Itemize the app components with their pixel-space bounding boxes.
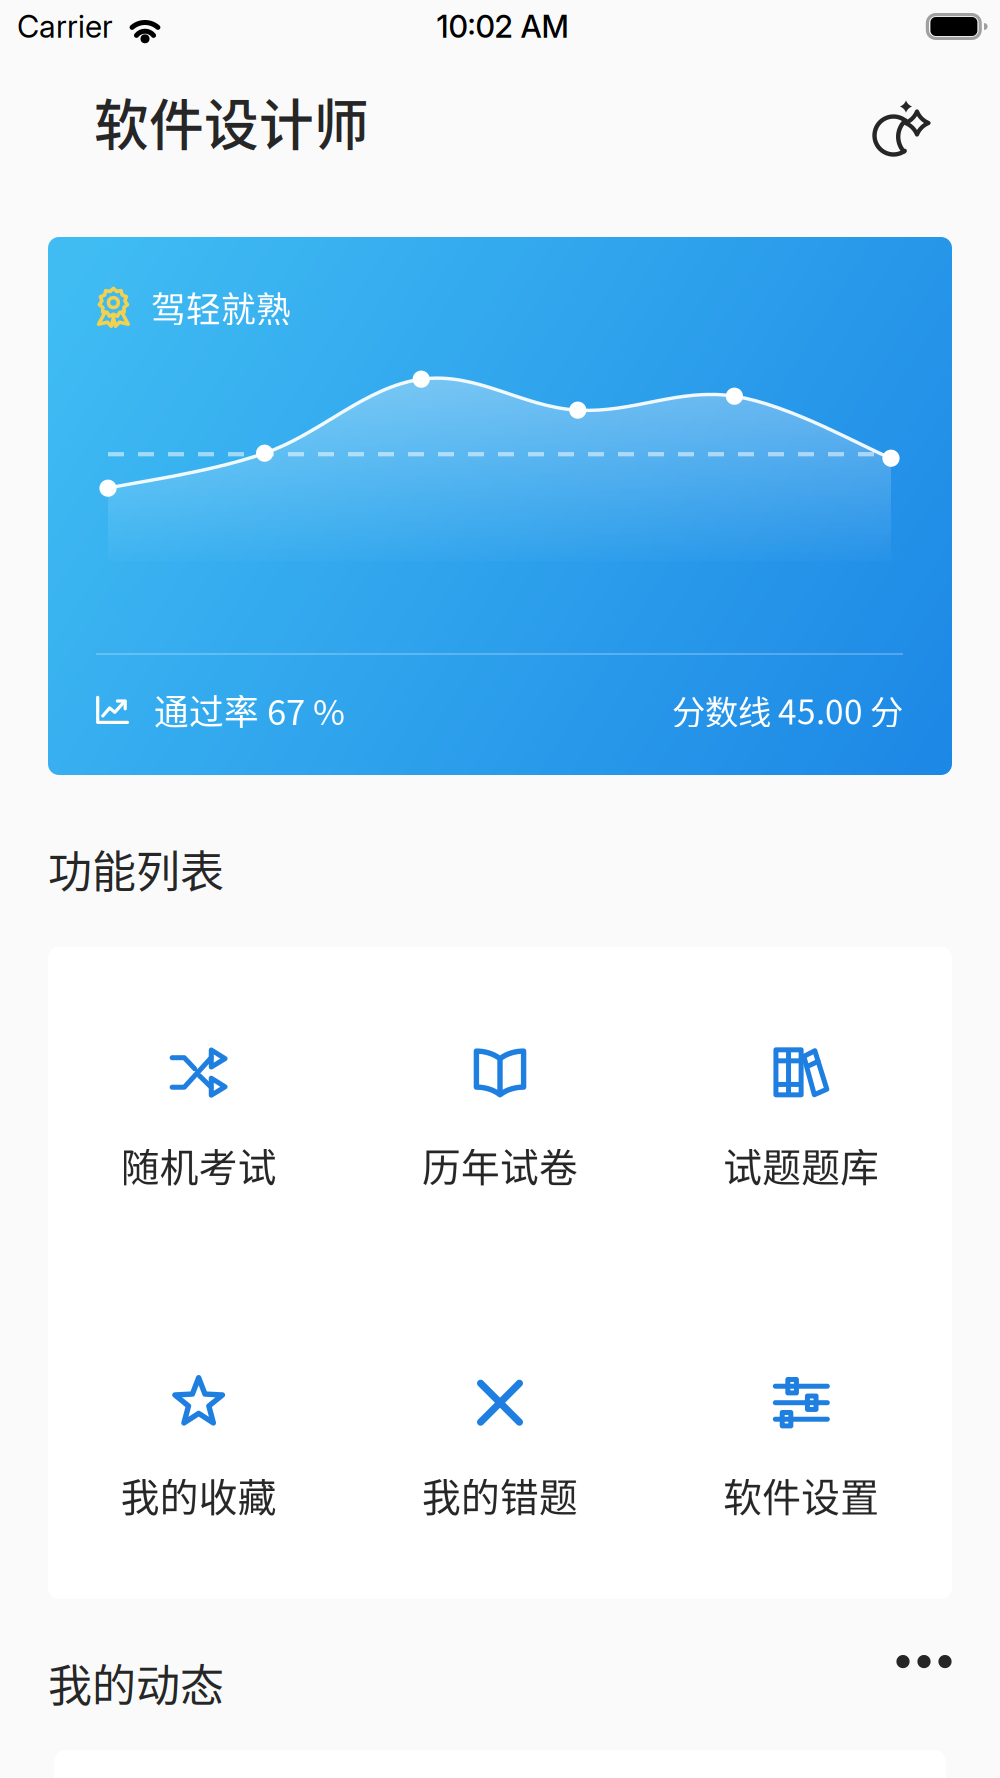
- button[interactable]: 历年试卷: [349, 1033, 651, 1205]
- staticText: 历年试卷: [422, 1137, 578, 1193]
- button[interactable]: 随机考试: [48, 1033, 349, 1205]
- button[interactable]: 我的错题: [349, 1363, 651, 1535]
- staticText: 驾轻就熟: [151, 282, 291, 332]
- staticText: 我的收藏: [121, 1467, 277, 1523]
- staticText: 软件设置: [723, 1467, 879, 1523]
- button[interactable]: Dark mode: [857, 67, 945, 167]
- staticText: Carrier: [17, 8, 113, 45]
- staticText: 我的错题: [422, 1467, 578, 1523]
- staticText: 我的动态: [48, 1651, 224, 1714]
- staticText: 功能列表: [48, 837, 224, 901]
- staticText: 试题题库: [723, 1137, 879, 1193]
- staticText: 10:02 AM: [436, 8, 568, 45]
- staticText: 随机考试: [121, 1137, 277, 1193]
- staticText: 软件设计师: [94, 81, 369, 161]
- button[interactable]: 试题题库: [651, 1033, 952, 1205]
- button[interactable]: 软件设置: [651, 1363, 952, 1535]
- staticText: 通过率 67 %: [154, 685, 345, 735]
- staticText: 分数线 45.00 分: [672, 686, 903, 734]
- button[interactable]: More: [896, 1655, 952, 1711]
- button[interactable]: 我的收藏: [48, 1363, 349, 1535]
